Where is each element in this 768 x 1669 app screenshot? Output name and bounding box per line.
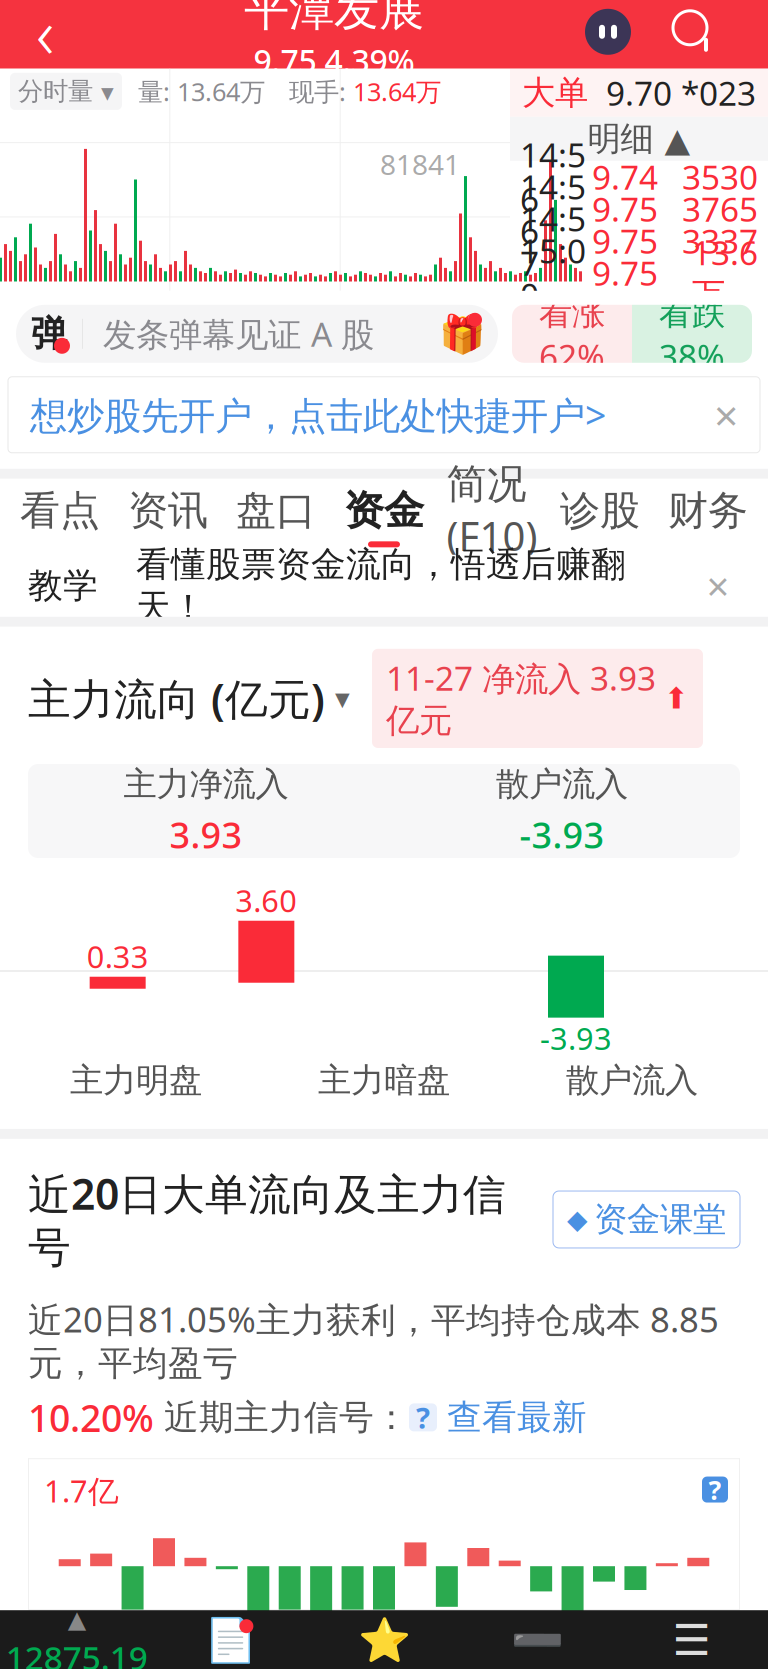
button[interactable]: Back bbox=[0, 0, 90, 69]
staticText: 9.75 4.39% bbox=[253, 39, 414, 82]
staticText: 3530 bbox=[682, 155, 758, 199]
button[interactable]: 资讯 bbox=[114, 479, 222, 555]
staticText: 查看最新 bbox=[437, 1396, 587, 1439]
staticText: × bbox=[714, 386, 738, 443]
staticText: 9.74 bbox=[592, 155, 658, 199]
staticText: 弹 bbox=[31, 312, 67, 356]
staticText: 平潭发展 bbox=[244, 0, 424, 37]
staticText: -3.93 bbox=[540, 1018, 612, 1058]
staticText: ◆ bbox=[567, 1204, 588, 1235]
staticText: 盘口 bbox=[236, 486, 316, 535]
staticText: 想炒股先开户，点击此处快捷开户> bbox=[30, 390, 606, 440]
button[interactable]: 主力流向 (亿元) bbox=[28, 670, 350, 727]
button[interactable]: ▲ bbox=[0, 1610, 154, 1669]
button[interactable]: Chart help bbox=[702, 1477, 728, 1503]
staticText: ‹ bbox=[36, 0, 54, 78]
staticText: ⬆ bbox=[664, 682, 689, 715]
button[interactable]: 诊股 bbox=[546, 479, 654, 555]
staticText: 资金 bbox=[344, 486, 424, 535]
staticText: 0.33 bbox=[87, 936, 149, 977]
staticText: 大单 bbox=[522, 72, 588, 113]
staticText: 14:57 bbox=[520, 196, 586, 285]
staticText: 主力明盘 bbox=[70, 1060, 202, 1101]
staticText: 12875.19 bbox=[6, 1635, 148, 1669]
staticText: 资讯 bbox=[128, 486, 208, 535]
staticText: -3.93 bbox=[519, 811, 604, 858]
staticText: ▾ bbox=[335, 682, 350, 715]
staticText: 散户流入 bbox=[496, 764, 628, 804]
button[interactable]: 弹 bbox=[16, 305, 498, 363]
staticText: 📄 bbox=[204, 1616, 257, 1665]
staticText: *023 bbox=[681, 71, 756, 115]
staticText: 🎁 bbox=[439, 312, 485, 355]
button[interactable]: ➖ bbox=[461, 1610, 614, 1669]
staticText: 近20日81.05%主力获利，平均持仓成本 8.85 元，平均盈亏 bbox=[28, 1296, 719, 1385]
staticText: 13.6万 bbox=[692, 230, 758, 315]
staticText: 财务 bbox=[668, 486, 748, 535]
staticText: 诊股 bbox=[560, 486, 640, 535]
button[interactable]: ☰ bbox=[614, 1610, 768, 1669]
staticText: 资金课堂 bbox=[594, 1199, 726, 1240]
staticText: 明细 ▲ bbox=[587, 118, 690, 159]
staticText: 3765 bbox=[682, 187, 758, 231]
button[interactable]: AI assistant bbox=[578, 0, 638, 67]
staticText: 简况(F10) bbox=[446, 460, 537, 562]
staticText: 13.64万 bbox=[353, 74, 441, 108]
staticText: 主力暗盘 bbox=[318, 1060, 450, 1101]
staticText: 量: 13.64万 现手: bbox=[122, 74, 353, 108]
staticText: 3337 bbox=[682, 219, 758, 263]
staticText: × bbox=[706, 559, 729, 612]
staticText: ➖ bbox=[511, 1616, 564, 1665]
button[interactable]: 看涨 62% bbox=[512, 305, 752, 363]
staticText: 9.70 bbox=[606, 71, 672, 115]
staticText: 3.93 bbox=[169, 811, 242, 858]
button[interactable]: 资金 bbox=[330, 479, 438, 555]
button[interactable]: 看点 bbox=[6, 479, 114, 555]
button[interactable]: Search bbox=[664, 0, 724, 67]
button[interactable]: 想炒股先开户，点击此处快捷开户> bbox=[8, 377, 760, 453]
staticText: 15:00 bbox=[520, 228, 586, 317]
staticText: 81841 bbox=[380, 146, 460, 183]
staticText: 9.75 bbox=[592, 219, 658, 263]
staticText: 近期主力信号： bbox=[154, 1396, 409, 1439]
staticText: ? bbox=[416, 1398, 430, 1437]
staticText: 看跌 38% bbox=[659, 289, 725, 378]
button[interactable]: 财务 bbox=[654, 479, 762, 555]
button[interactable]: 盘口 bbox=[222, 479, 330, 555]
staticText: 3.60 bbox=[235, 880, 297, 921]
staticText: 散户流入 bbox=[566, 1060, 698, 1101]
staticText: 14:56 bbox=[520, 164, 586, 253]
staticText: 主力流向 (亿元) bbox=[28, 670, 325, 727]
button[interactable]: 明细 ▲ bbox=[510, 117, 768, 161]
button[interactable]: Dismiss bbox=[696, 564, 740, 608]
button[interactable]: 查看最新 bbox=[437, 1396, 587, 1439]
button[interactable]: 简况(F10) bbox=[438, 479, 546, 555]
staticText: 教学 bbox=[28, 564, 98, 607]
staticText: 9.75 bbox=[592, 251, 658, 295]
staticText: 1.7亿 bbox=[44, 1470, 119, 1511]
staticText: 看懂股票资金流向，悟透后赚翻天！ bbox=[136, 543, 626, 628]
staticText: ▲ bbox=[68, 1606, 86, 1633]
button[interactable]: 📄 bbox=[154, 1610, 307, 1669]
staticText: 9.75 bbox=[592, 187, 658, 231]
staticText: 主力净流入 bbox=[123, 764, 288, 804]
staticText: 看涨 62% bbox=[539, 289, 605, 378]
staticText: 14:56 bbox=[520, 132, 586, 221]
staticText: ☰ bbox=[672, 1616, 710, 1664]
staticText: ? bbox=[708, 1472, 721, 1507]
staticText: 10.20% bbox=[28, 1393, 154, 1442]
staticText: 发条弹幕见证 A 股 bbox=[103, 312, 374, 356]
staticText: ⭐ bbox=[357, 1616, 410, 1665]
button[interactable]: ⭐ bbox=[307, 1610, 461, 1669]
staticText: 11-27 净流入 3.93 亿元 bbox=[386, 656, 656, 741]
staticText: 看点 bbox=[20, 486, 100, 535]
staticText: 分时量 ▾ bbox=[18, 76, 114, 107]
button[interactable]: Help bbox=[409, 1403, 437, 1431]
button[interactable]: ◆ bbox=[553, 1191, 740, 1248]
staticText: 近20日大单流向及主力信号 bbox=[28, 1165, 506, 1274]
